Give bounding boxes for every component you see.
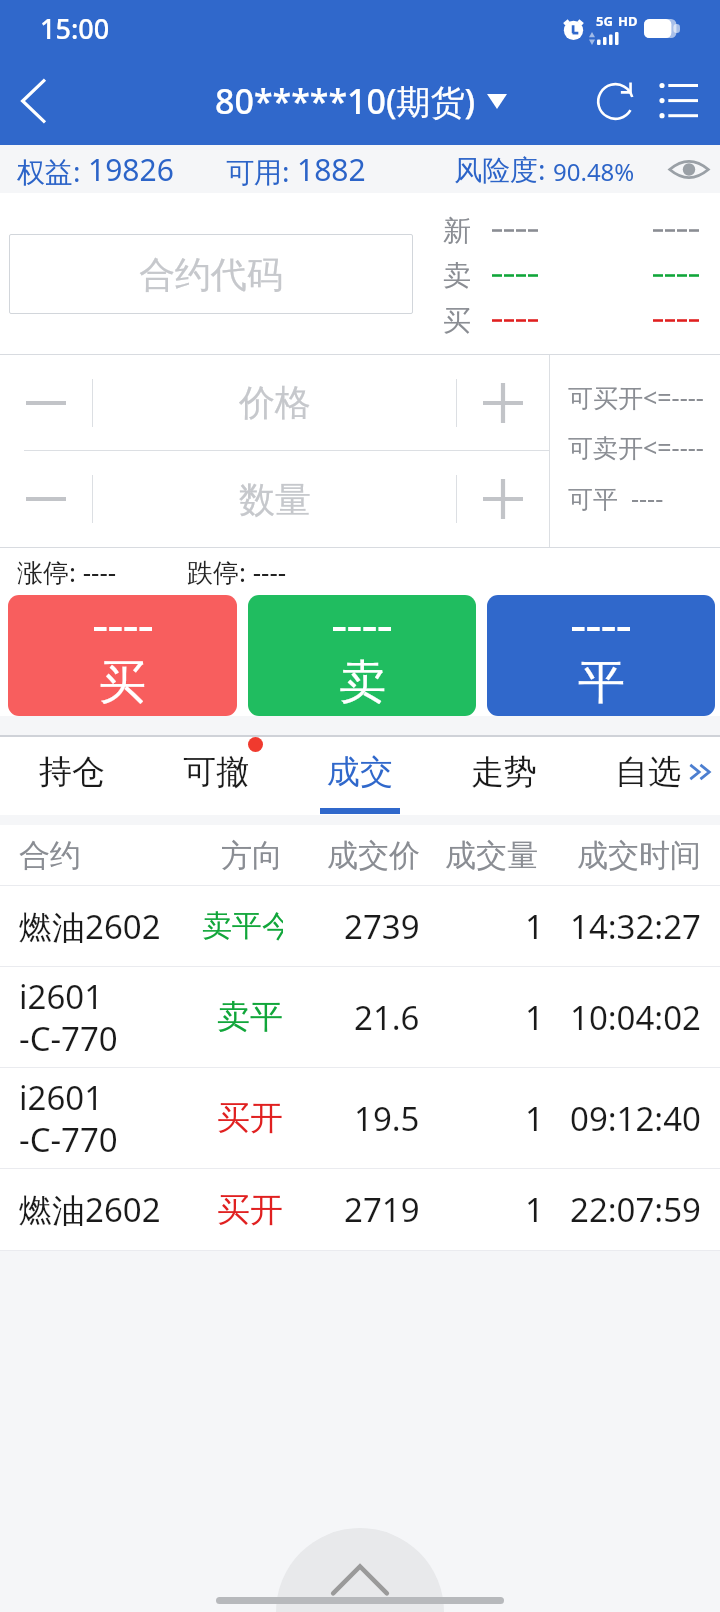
staticText: 可买开<=---- (568, 380, 704, 414)
staticText: 卖平 (217, 996, 283, 1038)
staticText: 可撤 (183, 751, 249, 793)
staticText: 成交 (327, 751, 393, 793)
staticText: 可平 ---- (568, 481, 664, 515)
staticText: 成交量 (445, 836, 538, 875)
staticText: 成交价 (327, 836, 420, 875)
staticText: 1 (525, 995, 544, 1040)
staticText: 09:12:40 (570, 1096, 701, 1141)
button[interactable]: i2601 -C-770 (0, 1068, 720, 1168)
staticText: 卖 (339, 653, 386, 712)
staticText: 1 (525, 904, 544, 949)
button[interactable]: 数量 (93, 451, 456, 547)
button[interactable]: Refresh (582, 56, 648, 145)
button[interactable]: 80*****10(期货) (215, 78, 507, 124)
staticText: 持仓 (39, 751, 105, 793)
button[interactable]: Decrease 数量 (0, 451, 92, 547)
staticText: 1 (525, 1187, 544, 1232)
button[interactable]: 走势 (432, 737, 576, 815)
button[interactable]: 价格 (93, 355, 456, 450)
staticText: 数量 (239, 477, 311, 522)
button[interactable]: Back (0, 56, 66, 145)
button[interactable]: Expand (276, 1528, 444, 1612)
button[interactable]: Menu (648, 56, 712, 145)
staticText: 走势 (471, 751, 537, 793)
button[interactable]: 燃油2602 (0, 1169, 720, 1250)
staticText: 价格 (239, 380, 311, 425)
staticText: 90.48% (553, 155, 635, 188)
staticText: 15:00 (40, 10, 110, 47)
staticText: 买 (99, 653, 146, 712)
staticText: 2739 (344, 904, 420, 949)
staticText: 21.6 (354, 995, 420, 1040)
staticText: 涨停: ---- (17, 554, 117, 590)
staticText: 自选 (615, 751, 681, 793)
button[interactable]: 卖 (248, 595, 476, 716)
staticText: 80*****10(期货) (215, 78, 476, 124)
staticText: 买 (443, 303, 471, 338)
button[interactable]: 可撤 (144, 737, 288, 815)
staticText: 燃油2602 (19, 904, 202, 949)
staticText: 燃油2602 (19, 1187, 202, 1232)
button[interactable]: Toggle visibility (658, 145, 720, 193)
button[interactable]: Decrease 价格 (0, 355, 92, 450)
staticText: 合约代码 (139, 252, 283, 297)
staticText: 2719 (344, 1187, 420, 1232)
staticText: 1 (525, 1096, 544, 1141)
button[interactable]: More tabs (680, 737, 720, 815)
button[interactable]: i2601 -C-770 (0, 967, 720, 1067)
button[interactable]: 买 (8, 595, 237, 716)
button[interactable]: 燃油2602 (0, 886, 720, 966)
staticText: 合约 (19, 836, 202, 875)
staticText: 10:04:02 (570, 995, 701, 1040)
staticText: 新 (443, 213, 471, 248)
staticText: 卖平今 (202, 907, 283, 945)
staticText: HD (618, 12, 638, 30)
staticText: 1882 (297, 149, 366, 190)
staticText: 可用: (226, 152, 297, 190)
staticText: 5G (596, 12, 613, 30)
staticText: 成交时间 (577, 836, 701, 875)
staticText: i2601 -C-770 (19, 1075, 202, 1162)
staticText: 方向 (221, 836, 283, 875)
staticText: 风险度: (454, 150, 553, 188)
staticText: 卖 (443, 258, 471, 293)
button[interactable]: Increase 价格 (457, 355, 549, 450)
button[interactable]: 自选 (576, 737, 720, 815)
staticText: 可卖开<=---- (568, 430, 704, 464)
staticText: 19826 (88, 149, 174, 190)
staticText: 权益: (17, 152, 88, 190)
button[interactable]: 平 (487, 595, 715, 716)
staticText: 买开 (217, 1189, 283, 1231)
staticText: 跌停: ---- (187, 554, 287, 590)
button[interactable]: 成交 (288, 737, 432, 815)
staticText: 买开 (217, 1097, 283, 1139)
staticText: 19.5 (354, 1096, 420, 1141)
staticText: 平 (578, 653, 625, 712)
button[interactable]: 合约代码 (9, 234, 413, 314)
staticText: 22:07:59 (570, 1187, 701, 1232)
staticText: 14:32:27 (570, 904, 701, 949)
staticText: i2601 -C-770 (19, 974, 202, 1061)
button[interactable]: 持仓 (0, 737, 144, 815)
button[interactable]: Increase 数量 (457, 451, 549, 547)
